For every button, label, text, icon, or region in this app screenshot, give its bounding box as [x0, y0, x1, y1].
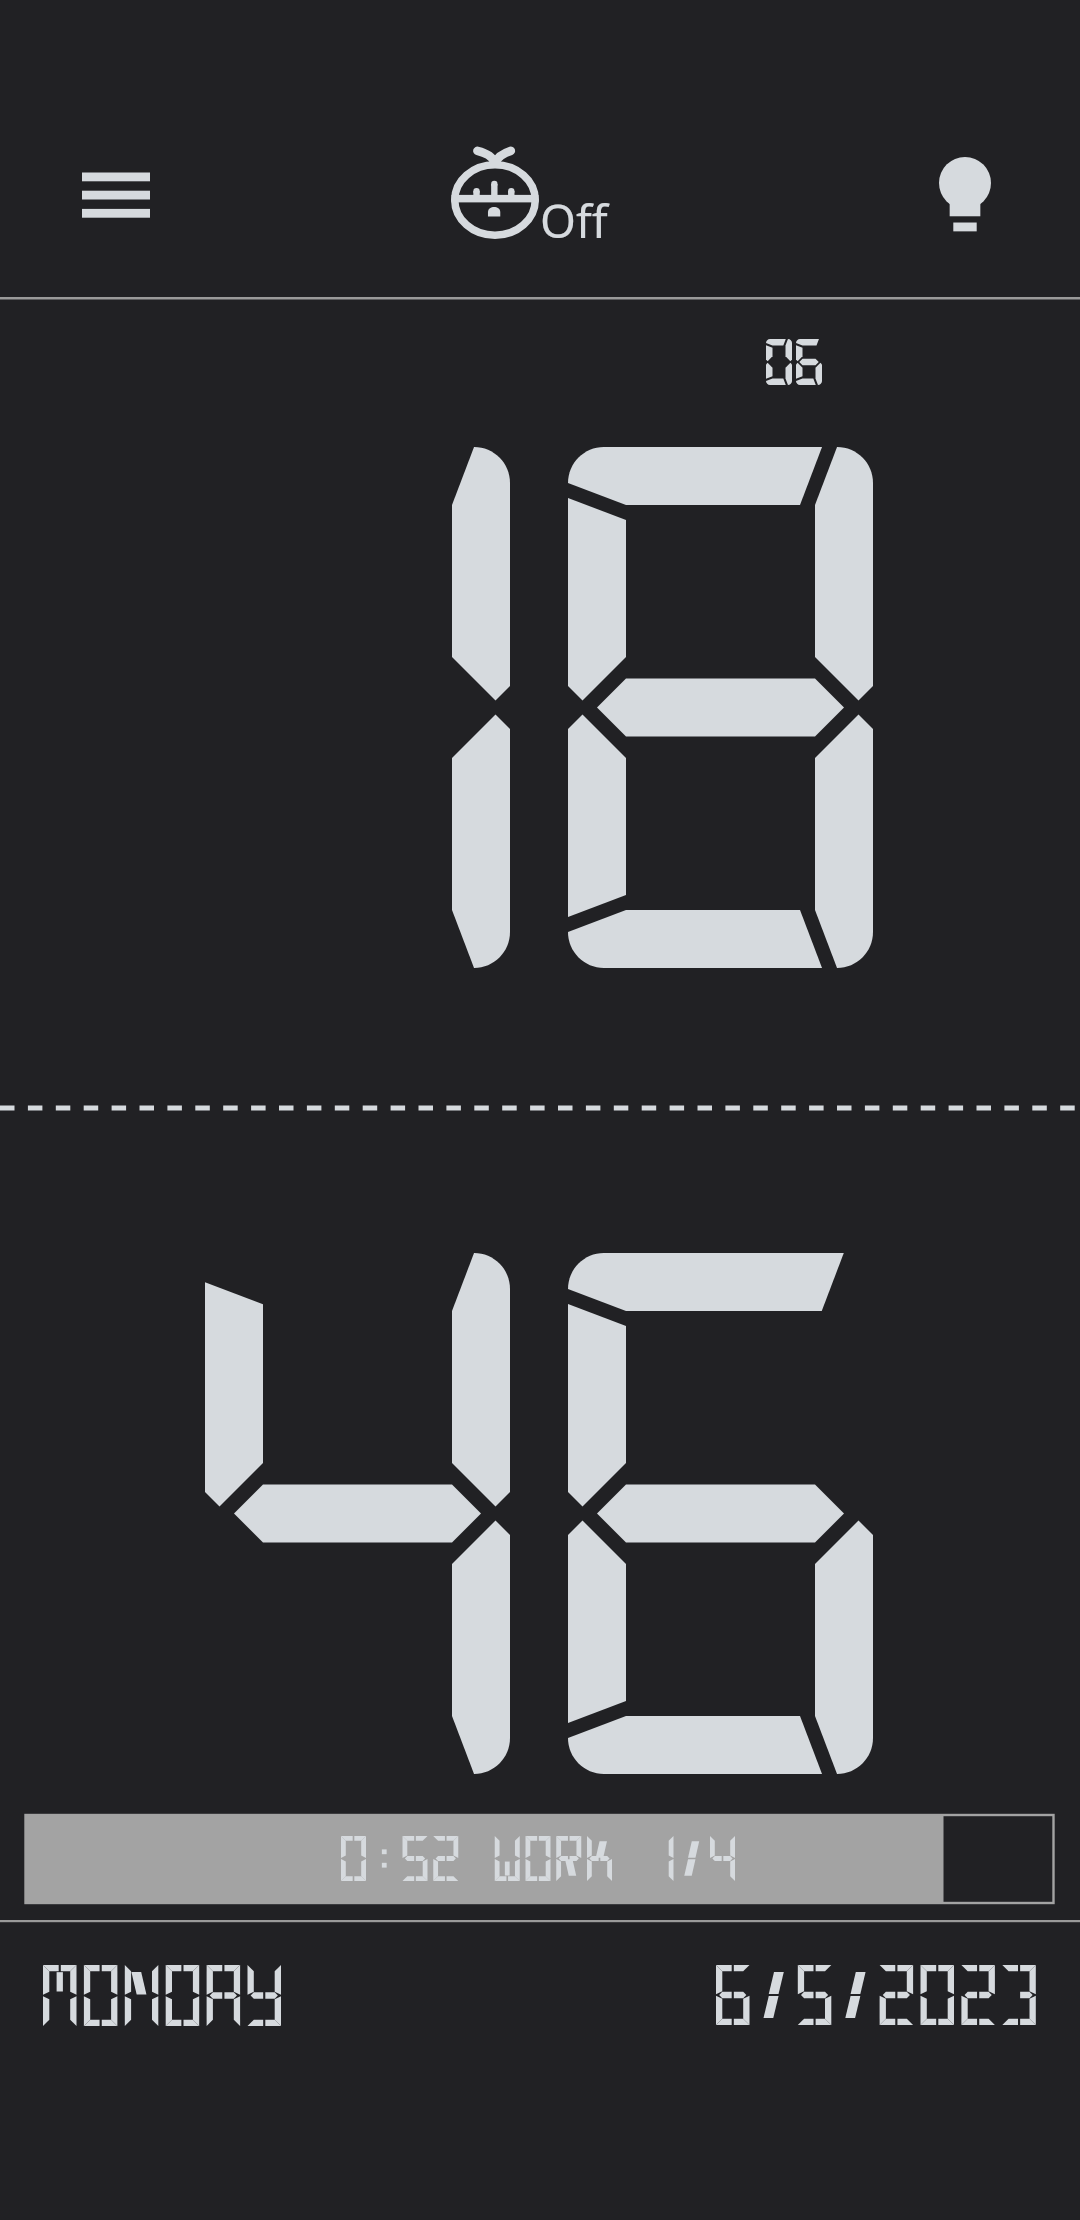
button[interactable]: Menu: [60, 155, 154, 237]
staticText: Off: [540, 189, 608, 252]
button[interactable]: Keep screen on: [915, 140, 1015, 250]
button[interactable]: Off: [437, 145, 612, 255]
